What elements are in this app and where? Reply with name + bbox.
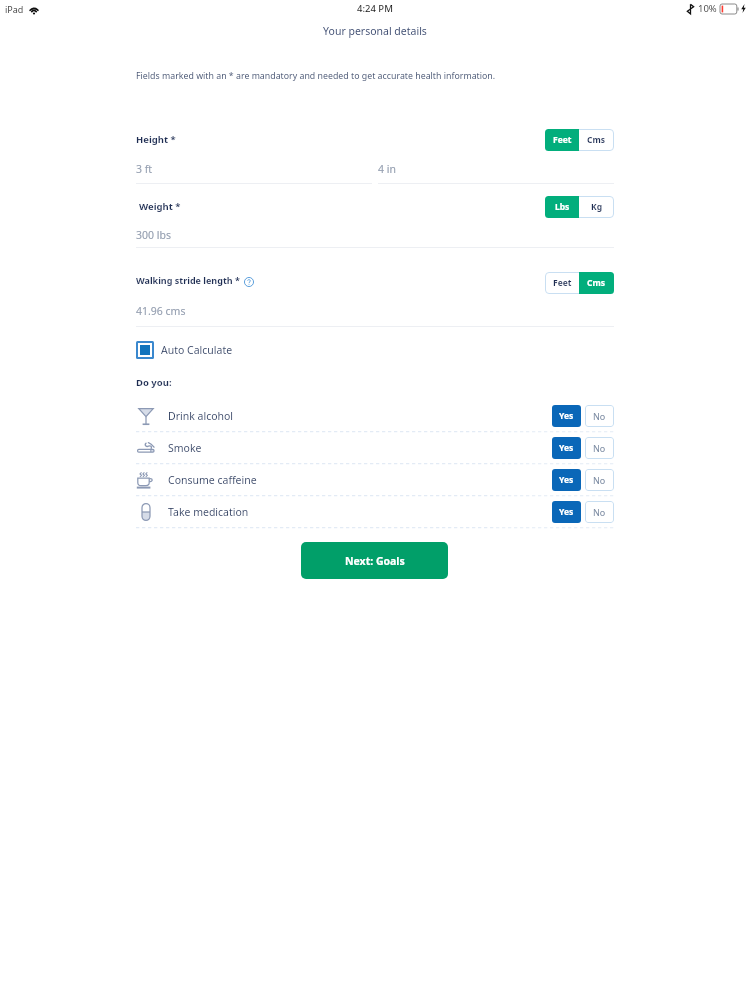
staticText: 10% [698, 2, 717, 15]
staticText: 3 ft [136, 162, 153, 176]
staticText: Feet [553, 277, 572, 289]
staticText: Feet [553, 134, 572, 146]
staticText: 4:24 PM [357, 2, 393, 15]
staticText: Yes [559, 474, 574, 486]
staticText: Consume caffeine [168, 473, 257, 487]
other: Info about walking stride length [244, 277, 254, 287]
staticText: Smoke [168, 441, 202, 455]
button[interactable]: Feet [545, 272, 579, 294]
staticText: Do you: [136, 376, 172, 389]
staticText: Take medication [168, 505, 249, 519]
staticText: iPad [5, 3, 24, 15]
staticText: Drink alcohol [168, 409, 234, 423]
button[interactable]: Auto Calculate [136, 339, 233, 361]
staticText: Cms [587, 134, 606, 146]
staticText: Next: Goals [345, 554, 405, 568]
button[interactable]: No [585, 405, 614, 427]
staticText: Yes [559, 442, 574, 454]
staticText: Weight * [139, 200, 181, 213]
button[interactable]: Take medication [136, 496, 614, 527]
button[interactable]: No [585, 437, 614, 459]
button[interactable]: No [585, 501, 614, 523]
button[interactable]: No [585, 469, 614, 491]
button[interactable]: Yes [552, 469, 581, 491]
button[interactable]: Lbs [545, 196, 579, 218]
button[interactable]: Cms [579, 129, 614, 151]
button[interactable]: Cms [579, 272, 614, 294]
staticText: Height * [136, 133, 176, 146]
button[interactable]: Consume caffeine [136, 464, 614, 495]
staticText: No [593, 410, 606, 422]
button[interactable]: Kg [579, 196, 614, 218]
staticText: 4 in [378, 162, 396, 176]
button[interactable]: Yes [552, 405, 581, 427]
button[interactable]: Drink alcohol [136, 400, 614, 431]
staticText: No [593, 506, 606, 518]
button[interactable]: Yes [552, 501, 581, 523]
staticText: Yes [559, 410, 574, 422]
staticText: Yes [559, 506, 574, 518]
staticText: Your personal details [0, 24, 750, 38]
button[interactable]: Yes [552, 437, 581, 459]
staticText: Lbs [555, 201, 570, 213]
staticText: 300 lbs [136, 228, 171, 242]
staticText: No [593, 474, 606, 486]
staticText: Kg [591, 201, 603, 213]
button[interactable]: Smoke [136, 432, 614, 463]
staticText: Walking stride length * [136, 274, 240, 286]
staticText: No [593, 442, 606, 454]
button[interactable]: Next: Goals [301, 542, 448, 579]
staticText: Cms [587, 277, 606, 289]
staticText: Auto Calculate [161, 343, 233, 357]
staticText: 41.96 cms [136, 304, 186, 318]
staticText: Fields marked with an * are mandatory an… [136, 70, 496, 82]
button[interactable]: Feet [545, 129, 579, 151]
